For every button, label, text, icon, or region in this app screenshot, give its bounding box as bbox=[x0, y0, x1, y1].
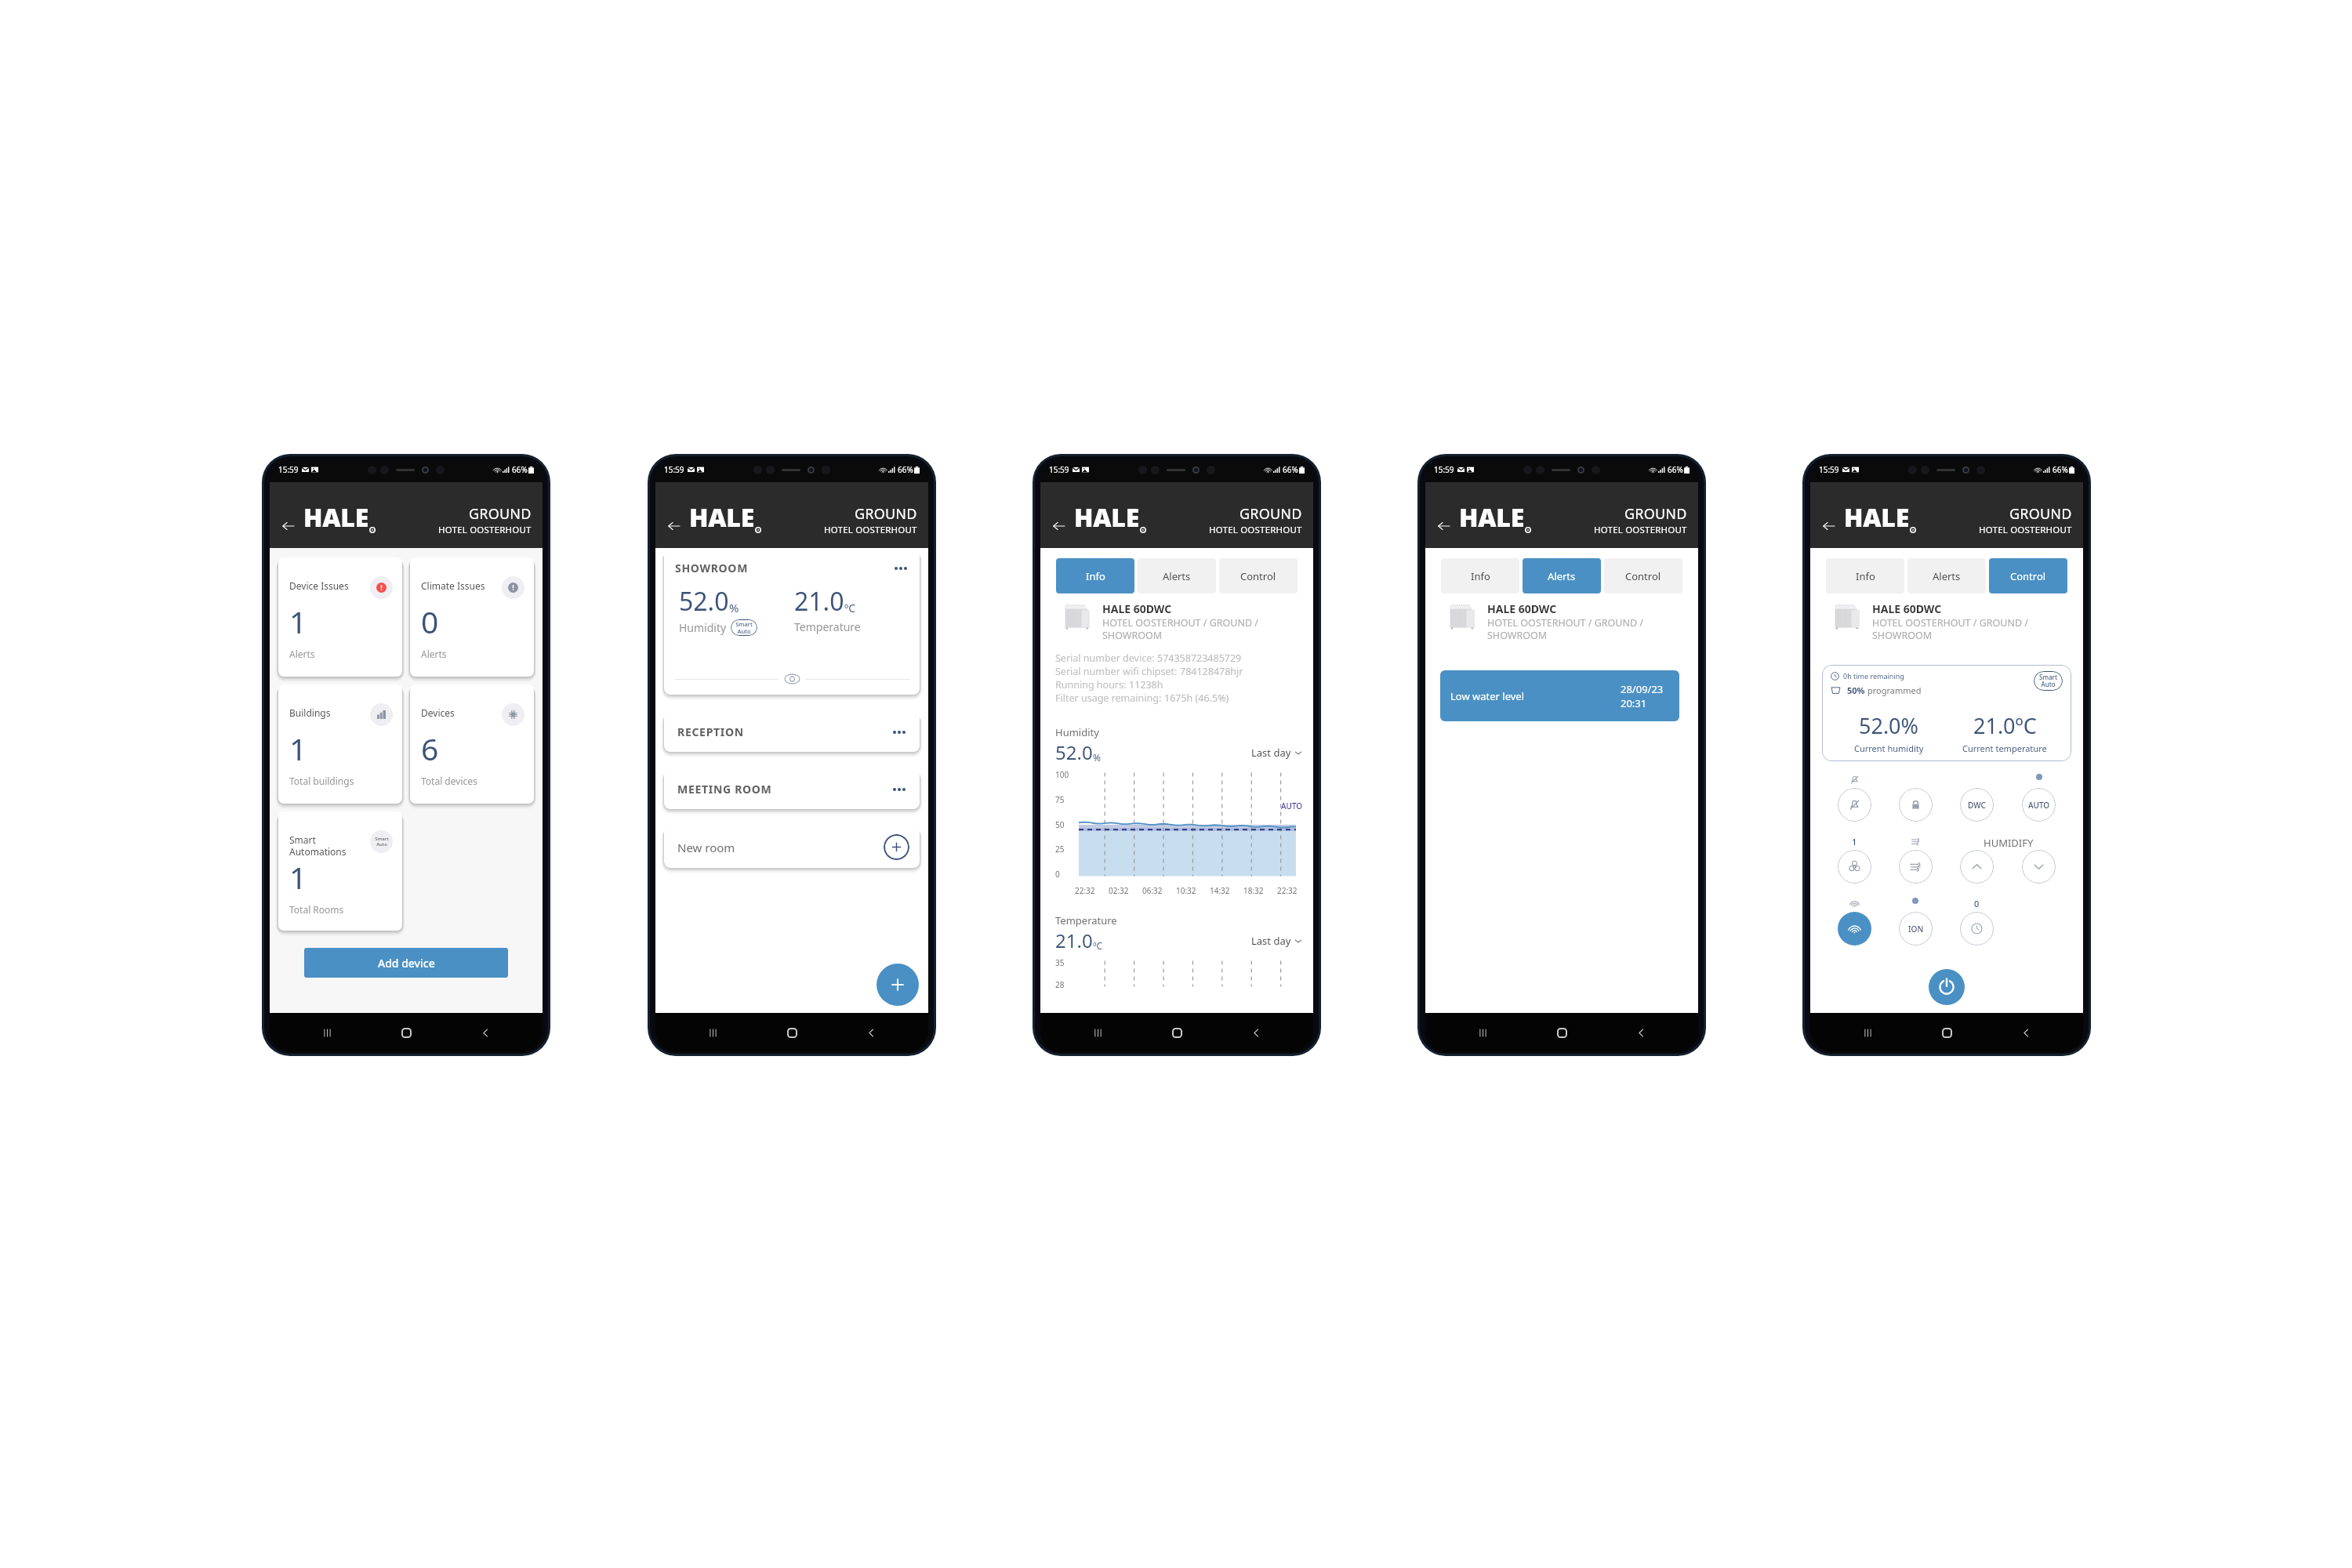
button[interactable]: Home bbox=[780, 1021, 804, 1044]
button[interactable]: Devices bbox=[410, 684, 534, 804]
button[interactable]: Back bbox=[1435, 517, 1454, 535]
button[interactable]: up bbox=[1960, 850, 1994, 884]
staticText: 02:32 bbox=[1109, 885, 1129, 896]
staticText: 1 bbox=[1852, 836, 1857, 848]
button[interactable]: New room bbox=[664, 826, 920, 868]
button[interactable]: Last day bbox=[1250, 932, 1304, 949]
staticText: Last day bbox=[1251, 934, 1291, 948]
staticText: Total buildings bbox=[289, 775, 354, 787]
button[interactable]: Smart Automations bbox=[278, 811, 402, 931]
button[interactable]: Climate Issues bbox=[410, 557, 534, 677]
button[interactable]: down bbox=[2022, 850, 2056, 884]
button[interactable]: AUTO bbox=[2022, 788, 2056, 822]
staticText: 28 bbox=[1055, 979, 1065, 990]
staticText: programmed bbox=[1867, 684, 1922, 696]
button[interactable]: Recents bbox=[1086, 1021, 1109, 1044]
staticText: GROUND bbox=[2009, 504, 2072, 524]
button[interactable]: SHOWROOM bbox=[664, 550, 920, 695]
button[interactable]: lock bbox=[1899, 788, 1933, 822]
staticText: Smart Auto bbox=[2039, 673, 2057, 689]
button[interactable]: Info bbox=[1826, 558, 1904, 593]
button[interactable]: RECEPTION bbox=[664, 712, 920, 752]
button[interactable]: MEETING ROOM bbox=[664, 769, 920, 809]
staticText: GROUND bbox=[855, 504, 917, 524]
staticText: Add device bbox=[378, 956, 435, 971]
button[interactable]: Home bbox=[394, 1021, 418, 1044]
button[interactable]: Alerts bbox=[1138, 558, 1216, 593]
button[interactable]: Last day bbox=[1250, 744, 1304, 761]
button[interactable]: mute bbox=[1838, 788, 1871, 822]
staticText: Alerts bbox=[1163, 569, 1191, 583]
button[interactable]: wind bbox=[1899, 850, 1933, 884]
button[interactable]: More options bbox=[890, 785, 909, 794]
staticText: Temperature bbox=[794, 619, 861, 634]
staticText: Buildings bbox=[289, 706, 370, 719]
button[interactable]: Info bbox=[1441, 558, 1519, 593]
button[interactable]: Alerts bbox=[1523, 558, 1601, 593]
staticText: Device Issues bbox=[289, 579, 370, 592]
staticText: HOTEL OOSTERHOUT / GROUND / SHOWROOM bbox=[1102, 616, 1258, 642]
button[interactable]: Power bbox=[1929, 969, 1965, 1005]
button[interactable]: Back bbox=[859, 1021, 883, 1044]
button[interactable]: Recents bbox=[701, 1021, 724, 1044]
button[interactable]: More options bbox=[890, 728, 909, 737]
staticText: New room bbox=[677, 840, 735, 855]
button[interactable]: Info bbox=[1056, 558, 1134, 593]
staticText: 0h time remaining bbox=[1843, 671, 1904, 681]
staticText: HALE 60DWC bbox=[1872, 601, 1942, 616]
button[interactable]: Home bbox=[1935, 1021, 1958, 1044]
button[interactable]: Back bbox=[474, 1021, 497, 1044]
button[interactable]: Buildings bbox=[278, 684, 402, 804]
button[interactable]: Home bbox=[1550, 1021, 1573, 1044]
staticText: 66% bbox=[1283, 464, 1298, 475]
staticText: GROUND bbox=[469, 504, 532, 524]
staticText: Control bbox=[1625, 569, 1661, 583]
staticText: HALE bbox=[1074, 500, 1140, 535]
staticText: Smart Automations bbox=[289, 833, 370, 858]
staticText: AUTO bbox=[2028, 800, 2050, 811]
staticText: 15:59 bbox=[1434, 464, 1454, 475]
button[interactable]: Back bbox=[1629, 1021, 1653, 1044]
button[interactable]: Low water level bbox=[1440, 670, 1679, 721]
button[interactable]: Add device bbox=[304, 948, 508, 978]
staticText: 21.0 bbox=[794, 584, 844, 619]
staticText: SHOWROOM bbox=[675, 561, 749, 575]
button[interactable]: Home bbox=[1165, 1021, 1189, 1044]
button[interactable]: Device Issues bbox=[278, 557, 402, 677]
button[interactable]: More options bbox=[891, 564, 910, 573]
staticText: HOTEL OOSTERHOUT bbox=[438, 524, 532, 536]
button[interactable]: Recents bbox=[1471, 1021, 1494, 1044]
staticText: 66% bbox=[2053, 464, 2068, 475]
staticText: Total Rooms bbox=[289, 903, 344, 916]
staticText: Last day bbox=[1251, 746, 1291, 760]
button[interactable]: Add room bbox=[877, 964, 919, 1006]
staticText: MEETING ROOM bbox=[677, 782, 772, 797]
button[interactable]: DWC bbox=[1960, 788, 1994, 822]
button[interactable]: Back bbox=[1050, 517, 1069, 535]
staticText: ºC bbox=[1093, 939, 1103, 952]
staticText: 15:59 bbox=[664, 464, 684, 475]
staticText: 52.0% bbox=[1859, 711, 1919, 740]
button[interactable]: timer bbox=[1960, 912, 1994, 946]
button[interactable]: fan bbox=[1838, 850, 1871, 884]
button[interactable]: Back bbox=[1820, 517, 1838, 535]
button[interactable]: Back bbox=[279, 517, 298, 535]
button[interactable]: ION bbox=[1899, 912, 1933, 946]
staticText: % bbox=[729, 600, 739, 615]
staticText: Serial number device: bbox=[1055, 652, 1157, 665]
button[interactable]: Alerts bbox=[1907, 558, 1986, 593]
button[interactable]: Back bbox=[665, 517, 684, 535]
button[interactable]: wifi bbox=[1838, 912, 1871, 946]
button[interactable]: Recents bbox=[315, 1021, 339, 1044]
button[interactable]: Control bbox=[1219, 558, 1298, 593]
staticText: Control bbox=[2010, 569, 2046, 583]
staticText: HALE bbox=[1844, 500, 1910, 535]
button[interactable]: Back bbox=[2014, 1021, 2038, 1044]
staticText: 50 bbox=[1055, 819, 1065, 830]
button[interactable]: Control bbox=[1989, 558, 2067, 593]
button[interactable]: Control bbox=[1604, 558, 1682, 593]
button[interactable]: Back bbox=[1244, 1021, 1268, 1044]
staticText: Smart Auto bbox=[735, 620, 753, 635]
button[interactable]: Recents bbox=[1856, 1021, 1879, 1044]
staticText: GROUND bbox=[1624, 504, 1687, 524]
